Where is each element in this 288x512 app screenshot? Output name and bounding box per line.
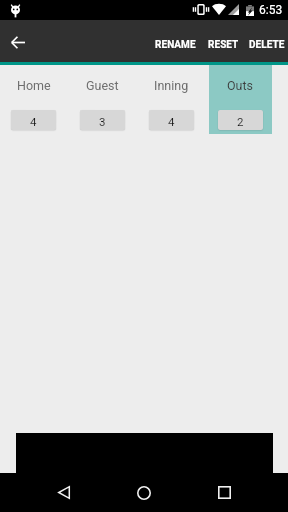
button[interactable]: Inning [140,65,203,134]
staticText: 4 [168,115,175,128]
staticText: Outs [227,78,254,93]
button[interactable]: 4 [149,110,194,130]
staticText: 4 [30,115,37,128]
button[interactable]: Guest [71,65,134,134]
staticText: Guest [86,78,119,93]
button[interactable]: RESET [202,27,244,63]
staticText: DELETE [249,39,285,51]
button[interactable]: Recent apps [200,473,248,512]
button[interactable]: Home [2,65,65,134]
staticText: 6:53 [259,3,283,17]
button[interactable]: 4 [11,110,56,130]
button[interactable]: 2 [218,110,263,130]
button[interactable]: Home [120,473,168,512]
button[interactable]: 3 [80,110,125,130]
button[interactable]: RENAME [155,27,202,63]
staticText: Home [17,78,51,93]
staticText: RENAME [155,39,196,51]
button[interactable]: Navigate up [0,20,35,62]
button[interactable]: DELETE [244,27,288,63]
staticText: Inning [154,78,189,93]
button[interactable]: Outs [209,65,272,134]
button[interactable]: Back [40,473,88,512]
staticText: 3 [99,115,106,128]
staticText: RESET [208,39,239,51]
staticText: 2 [237,115,244,128]
